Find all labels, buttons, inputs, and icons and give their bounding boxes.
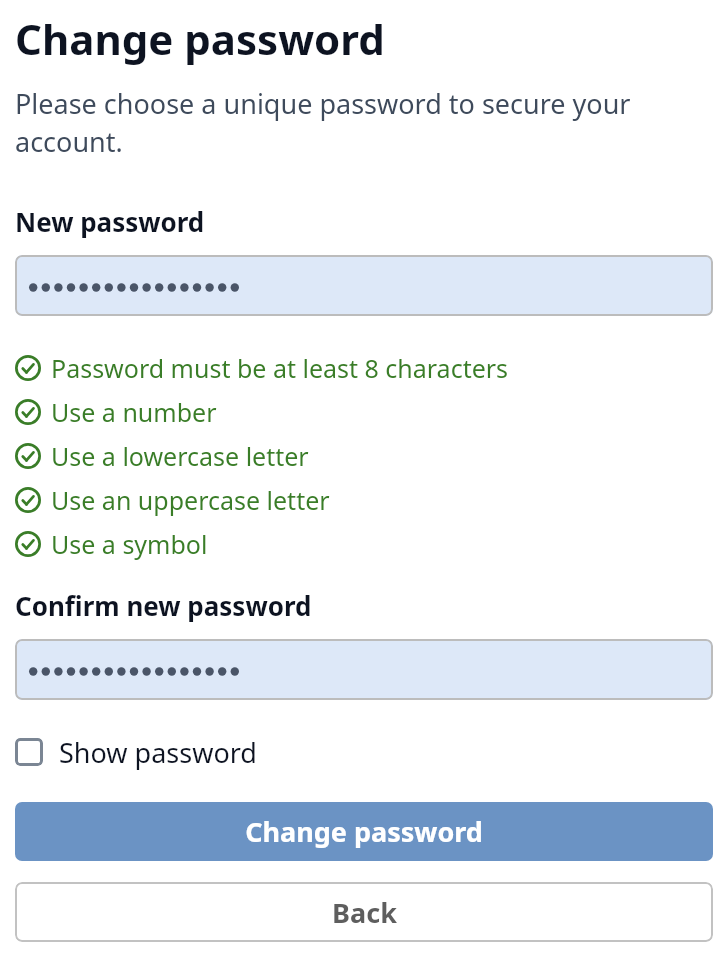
- button[interactable]: [15, 255, 713, 316]
- staticText: Use a lowercase letter: [51, 439, 309, 473]
- staticText: Use an uppercase letter: [51, 483, 330, 517]
- button[interactable]: Show password: [15, 730, 713, 774]
- button[interactable]: [15, 639, 713, 700]
- button[interactable]: Change password: [15, 802, 713, 861]
- staticText: Password must be at least 8 characters: [51, 351, 509, 385]
- staticText: Use a symbol: [51, 527, 208, 561]
- staticText: Back: [332, 894, 397, 931]
- staticText: Confirm new password: [15, 588, 312, 623]
- staticText: Change password: [15, 10, 385, 67]
- staticText: Show password: [59, 734, 257, 771]
- staticText: Please choose a unique password to secur…: [15, 85, 713, 160]
- staticText: Use a number: [51, 395, 217, 429]
- staticText: Change password: [245, 813, 483, 850]
- staticText: New password: [15, 204, 205, 239]
- button[interactable]: Back: [15, 882, 713, 942]
